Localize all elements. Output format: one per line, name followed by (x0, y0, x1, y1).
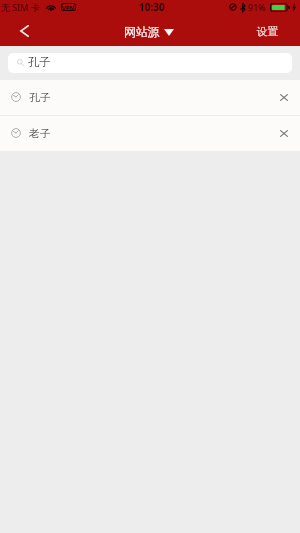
button[interactable]: 孔子 (8, 53, 292, 73)
staticText: VPN (62, 4, 75, 10)
button[interactable]: 老子 (0, 116, 300, 151)
staticText: 无 SIM 卡 (1, 1, 40, 13)
staticText: 孔子 (29, 91, 51, 104)
staticText: 孔子 (28, 55, 51, 69)
button[interactable]: 设置 (257, 18, 278, 46)
button[interactable]: Remove (268, 116, 300, 151)
button[interactable]: Remove (268, 80, 300, 115)
staticText: 91% (248, 1, 266, 13)
staticText: 设置 (257, 25, 278, 38)
button[interactable]: 网站源 (124, 25, 174, 40)
button[interactable]: Back (0, 18, 40, 46)
staticText: 老子 (29, 127, 51, 140)
button[interactable]: 孔子 (0, 80, 300, 115)
staticText: 网站源 (124, 25, 160, 40)
staticText: 10:30 (139, 0, 165, 14)
